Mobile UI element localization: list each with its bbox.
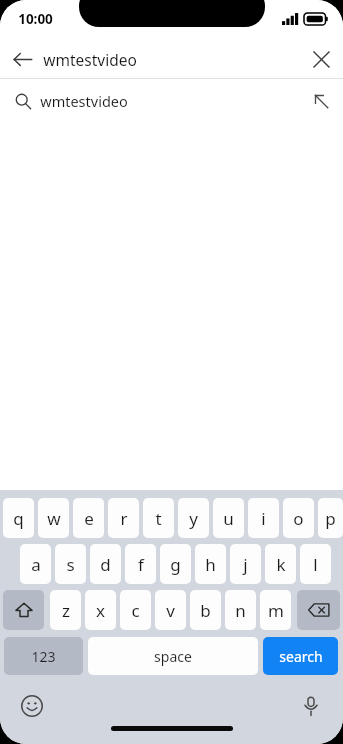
button[interactable]: f — [125, 544, 156, 584]
button[interactable]: v — [155, 590, 186, 630]
button[interactable]: b — [190, 590, 221, 630]
button[interactable]: Voice input — [291, 686, 331, 726]
button[interactable]: w — [38, 498, 69, 538]
button[interactable]: s — [55, 544, 86, 584]
button[interactable]: k — [265, 544, 296, 584]
staticText: wmtestvideo — [40, 91, 128, 111]
staticText: e — [84, 507, 94, 530]
staticText: f — [138, 553, 144, 576]
button[interactable]: a — [20, 544, 51, 584]
button[interactable]: Shift — [3, 590, 44, 630]
button[interactable]: x — [85, 590, 116, 630]
staticText: v — [166, 599, 175, 622]
staticText: j — [243, 553, 248, 576]
staticText: search — [279, 647, 323, 666]
button[interactable]: wmtestvideo — [0, 79, 343, 123]
staticText: z — [62, 599, 70, 622]
staticText: p — [325, 507, 336, 530]
button[interactable]: space — [88, 637, 258, 675]
button[interactable]: search — [263, 637, 338, 675]
staticText: b — [200, 599, 211, 622]
button[interactable]: z — [50, 590, 81, 630]
staticText: n — [235, 599, 246, 622]
staticText: 123 — [31, 647, 56, 666]
staticText: wmtestvideo — [43, 49, 137, 70]
staticText: q — [13, 507, 24, 530]
button[interactable]: n — [225, 590, 256, 630]
staticText: u — [223, 507, 234, 530]
staticText: c — [131, 599, 140, 622]
button[interactable]: y — [178, 498, 209, 538]
button[interactable]: l — [300, 544, 331, 584]
staticText: s — [66, 553, 75, 576]
staticText: x — [96, 599, 105, 622]
button[interactable]: 123 — [4, 637, 83, 675]
button[interactable]: p — [318, 498, 343, 538]
staticText: t — [155, 507, 162, 530]
button[interactable]: g — [160, 544, 191, 584]
button[interactable]: Insert suggestion — [299, 79, 343, 123]
staticText: m — [268, 599, 284, 622]
button[interactable]: Backspace — [297, 590, 340, 630]
button[interactable]: t — [143, 498, 174, 538]
staticText: l — [313, 553, 318, 576]
staticText: w — [47, 507, 61, 530]
button[interactable]: u — [213, 498, 244, 538]
staticText: y — [189, 507, 198, 530]
button[interactable]: o — [283, 498, 314, 538]
button[interactable]: h — [195, 544, 226, 584]
button[interactable]: r — [108, 498, 139, 538]
button[interactable]: Back — [0, 40, 44, 78]
staticText: space — [154, 647, 192, 666]
staticText: k — [276, 553, 286, 576]
button[interactable]: q — [3, 498, 34, 538]
staticText: r — [120, 507, 128, 530]
button[interactable]: Clear — [299, 40, 343, 78]
staticText: h — [205, 553, 216, 576]
staticText: 10:00 — [18, 10, 53, 28]
button[interactable]: Emoji — [12, 686, 52, 726]
staticText: d — [100, 553, 111, 576]
button[interactable]: j — [230, 544, 261, 584]
button[interactable]: i — [248, 498, 279, 538]
button[interactable]: m — [260, 590, 291, 630]
button[interactable]: d — [90, 544, 121, 584]
staticText: a — [31, 553, 41, 576]
button[interactable]: e — [73, 498, 104, 538]
staticText: o — [293, 507, 304, 530]
button[interactable]: c — [120, 590, 151, 630]
staticText: i — [261, 507, 266, 530]
staticText: g — [170, 553, 181, 576]
